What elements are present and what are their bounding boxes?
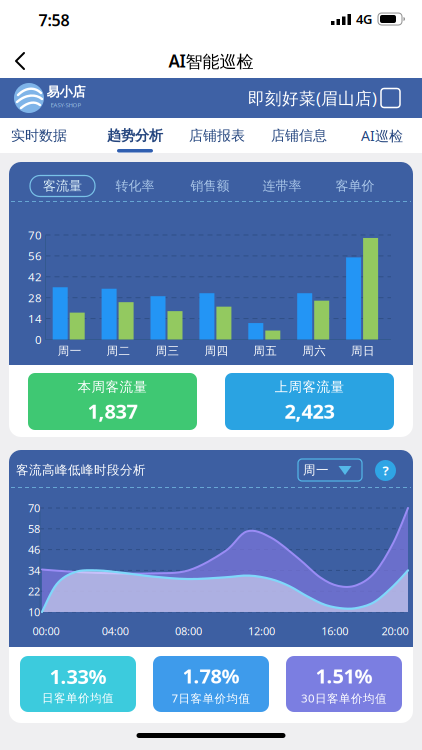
staticText: 10 (28, 604, 40, 619)
staticText: 20:00 (381, 623, 408, 638)
staticText: 日客单价均值 (42, 691, 114, 705)
staticText: 58 (28, 521, 40, 536)
staticText: 22 (28, 584, 40, 599)
staticText: 店铺报表 (189, 127, 245, 144)
staticText: 70 (28, 500, 40, 515)
staticText: 1.33% (49, 663, 106, 690)
staticText: 2,423 (284, 397, 334, 425)
staticText: 7:58 (38, 9, 69, 31)
staticText: 08:00 (175, 623, 202, 638)
button[interactable]: 切换门店 (248, 87, 400, 109)
staticText: 7日客单价均值 (171, 690, 250, 706)
staticText: 周三 (155, 344, 179, 358)
button[interactable]: 店铺报表 (179, 118, 255, 153)
button[interactable]: 趋势分析 (97, 118, 173, 153)
staticText: AI智能巡检 (168, 49, 253, 73)
button[interactable]: 销售额 (175, 173, 245, 199)
button[interactable]: AI巡检 (344, 118, 420, 153)
staticText: 周日 (351, 344, 375, 358)
staticText: 客流高峰低峰时段分析 (16, 462, 146, 478)
staticText: 12:00 (248, 623, 275, 638)
staticText: 客流量 (43, 178, 82, 194)
staticText: 实时数据 (11, 127, 67, 144)
staticText: 34 (28, 563, 40, 578)
staticText: 04:00 (102, 623, 129, 638)
staticText: 周五 (253, 344, 277, 358)
staticText: 上周客流量 (274, 378, 344, 395)
staticText: 周一 (58, 344, 82, 358)
staticText: 30日客单价均值 (301, 690, 387, 706)
staticText: EASY·SHOP (50, 101, 81, 109)
staticText: 56 (28, 248, 42, 264)
staticText: 16:00 (321, 623, 348, 638)
staticText: 70 (28, 227, 42, 243)
staticText: 易小店 (46, 84, 85, 100)
staticText: 周一 (303, 462, 329, 478)
staticText: 本周客流量 (77, 378, 147, 395)
staticText: ? (382, 462, 388, 479)
button[interactable]: 选择日期 (298, 459, 362, 481)
staticText: 转化率 (115, 178, 154, 194)
staticText: 42 (28, 269, 42, 285)
staticText: 0 (35, 332, 42, 347)
staticText: 28 (28, 290, 42, 306)
button[interactable]: Back (0, 44, 44, 78)
staticText: 00:00 (32, 623, 59, 638)
button[interactable]: 连带率 (247, 173, 317, 199)
staticText: 客单价 (335, 178, 374, 194)
staticText: 店铺信息 (271, 127, 327, 144)
staticText: 1.78% (182, 662, 239, 689)
button[interactable]: 实时数据 (1, 118, 77, 153)
staticText: 1,837 (87, 397, 137, 425)
button[interactable]: 客单价 (320, 173, 390, 199)
staticText: 连带率 (262, 178, 301, 194)
staticText: AI巡检 (361, 126, 403, 145)
button[interactable]: 上周客流量 (225, 373, 394, 430)
staticText: 1.51% (315, 662, 372, 689)
staticText: 周二 (107, 344, 131, 358)
staticText: 即刻好菜(眉山店) (248, 87, 377, 109)
staticText: 46 (28, 542, 40, 557)
button[interactable]: 店铺信息 (261, 118, 337, 153)
button[interactable]: 客流量 (27, 173, 97, 199)
button[interactable]: 帮助 (375, 460, 396, 481)
button[interactable]: 转化率 (100, 173, 170, 199)
button[interactable]: 本周客流量 (28, 373, 197, 430)
staticText: 销售额 (190, 178, 229, 194)
staticText: 4G (356, 10, 372, 28)
staticText: 趋势分析 (107, 127, 163, 144)
staticText: 周四 (204, 344, 228, 358)
staticText: 周六 (302, 344, 326, 358)
staticText: 14 (28, 311, 42, 326)
